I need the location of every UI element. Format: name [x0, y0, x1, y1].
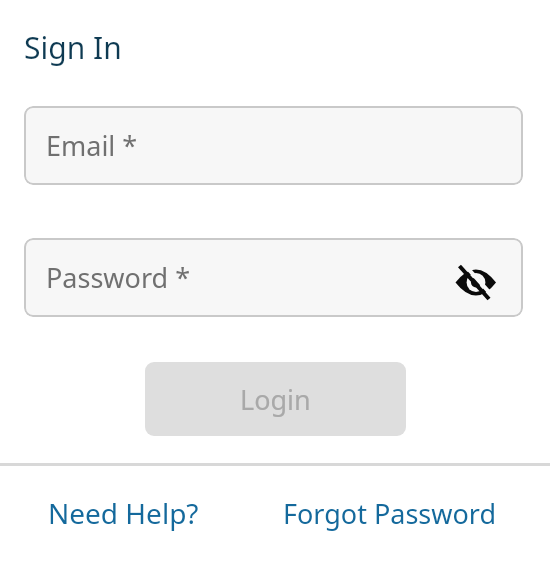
staticText: Email * [46, 127, 138, 164]
button[interactable] [455, 262, 495, 302]
button[interactable]: Login [145, 362, 406, 436]
staticText: Password * [46, 259, 191, 296]
staticText: Sign In [24, 27, 122, 68]
button[interactable]: Need Help? [48, 494, 199, 532]
staticText: Login [240, 381, 311, 418]
button[interactable]: Password * [24, 238, 523, 317]
button[interactable]: Email * [24, 106, 523, 185]
button[interactable]: Forgot Password [283, 495, 497, 532]
